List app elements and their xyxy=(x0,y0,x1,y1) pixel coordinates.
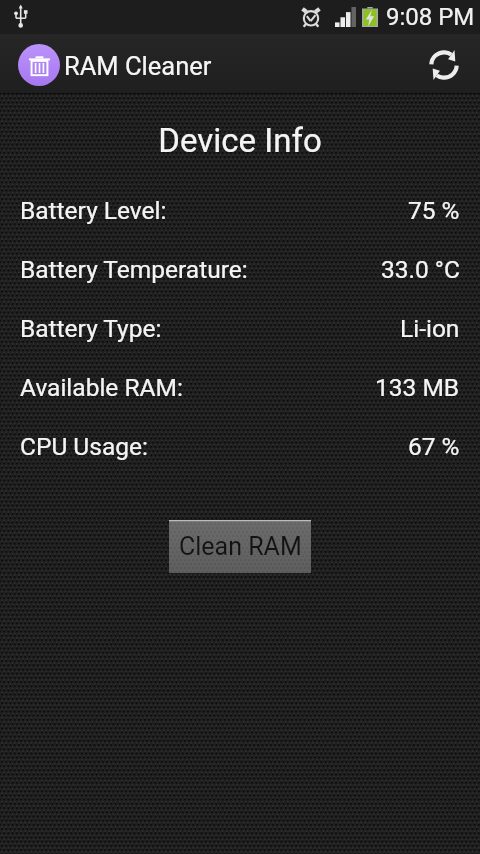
button[interactable]: CPU Usage: xyxy=(0,417,480,476)
staticText: 67 % xyxy=(408,432,460,461)
staticText: Clean RAM xyxy=(179,532,302,561)
staticText: Li-ion xyxy=(400,314,460,343)
staticText: RAM Cleaner xyxy=(64,51,212,81)
staticText: Device Info xyxy=(0,121,480,160)
button[interactable]: Clean RAM xyxy=(169,520,311,573)
button[interactable]: Available RAM: xyxy=(0,358,480,417)
button[interactable]: Refresh xyxy=(414,35,474,95)
staticText: Battery Level: xyxy=(20,196,167,225)
button[interactable]: Battery Level: xyxy=(0,181,480,240)
staticText: Battery Type: xyxy=(20,314,162,343)
staticText: 33.0 °C xyxy=(381,255,460,284)
staticText: 75 % xyxy=(408,196,460,225)
staticText: Available RAM: xyxy=(20,373,183,402)
staticText: 133 MB xyxy=(375,373,460,402)
button[interactable]: Battery Type: xyxy=(0,299,480,358)
staticText: CPU Usage: xyxy=(20,432,148,461)
staticText: Battery Temperature: xyxy=(20,255,248,284)
staticText: 9:08 PM xyxy=(386,3,475,31)
button[interactable]: Battery Temperature: xyxy=(0,240,480,299)
other: USB connected xyxy=(14,4,28,28)
